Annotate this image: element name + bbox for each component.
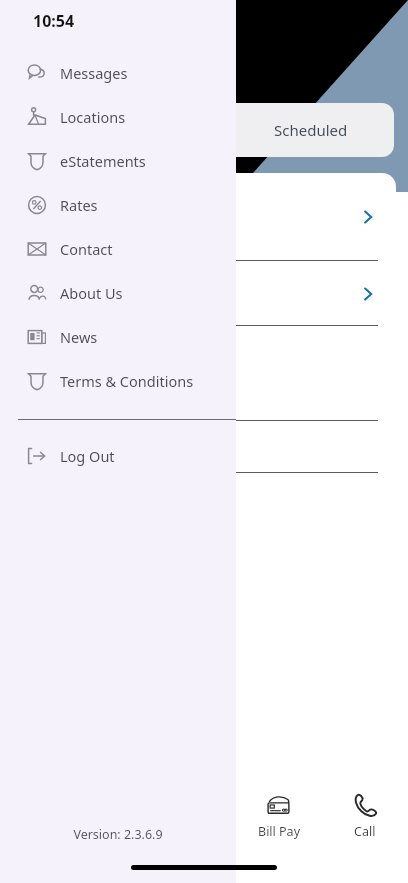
button[interactable] xyxy=(236,173,396,261)
button[interactable]: Locations xyxy=(0,95,236,139)
staticText: About Us xyxy=(60,283,123,303)
staticText: Terms & Conditions xyxy=(60,371,194,391)
staticText: eStatements xyxy=(60,151,146,171)
button[interactable] xyxy=(236,326,396,421)
button[interactable]: Call xyxy=(322,787,408,849)
staticText: Log Out xyxy=(60,446,115,466)
button[interactable]: eStatements xyxy=(0,139,236,183)
button[interactable]: Contact xyxy=(0,227,236,271)
button[interactable] xyxy=(236,421,396,473)
staticText: Scheduled xyxy=(274,120,348,140)
staticText: News xyxy=(60,327,98,347)
button[interactable]: News xyxy=(0,315,236,359)
button[interactable]: Terms & Conditions xyxy=(0,359,236,403)
staticText: Rates xyxy=(60,195,98,215)
button[interactable]: Rates xyxy=(0,183,236,227)
staticText: 10:54 xyxy=(33,10,75,32)
button[interactable]: Scheduled xyxy=(236,103,394,157)
staticText: Call xyxy=(354,823,376,840)
button[interactable] xyxy=(236,261,396,326)
staticText: Messages xyxy=(60,63,128,83)
button[interactable]: Messages xyxy=(0,51,236,95)
button[interactable]: Log Out xyxy=(0,434,236,478)
staticText: Bill Pay xyxy=(258,823,301,840)
button[interactable]: About Us xyxy=(0,271,236,315)
staticText: Version: 2.3.6.9 xyxy=(0,826,236,843)
staticText: Locations xyxy=(60,107,126,127)
staticText: Contact xyxy=(60,239,113,259)
button[interactable]: Bill Pay xyxy=(236,787,322,849)
